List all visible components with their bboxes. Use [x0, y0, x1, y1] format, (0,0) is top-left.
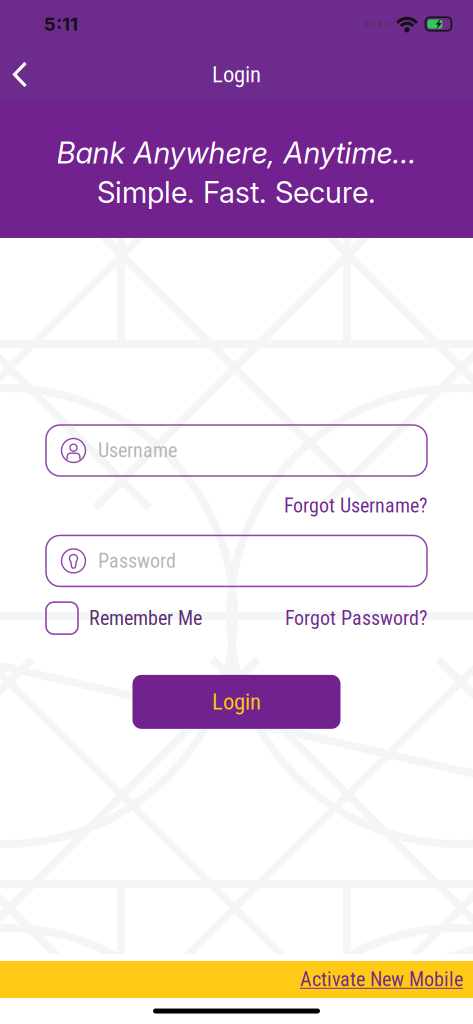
- button[interactable]: Login: [132, 675, 340, 729]
- button[interactable]: Forgot Password?: [285, 600, 427, 636]
- staticText: Activate New Mobile: [300, 968, 463, 991]
- staticText: Bank Anywhere, Anytime...: [56, 135, 416, 170]
- button[interactable]: Back: [0, 51, 44, 98]
- staticText: Login: [212, 689, 261, 715]
- staticText: Login: [212, 61, 261, 88]
- button[interactable]: Remember Me: [46, 602, 202, 634]
- button[interactable]: Activate New Mobile: [300, 968, 463, 991]
- button[interactable]: Forgot Username?: [284, 491, 427, 520]
- staticText: Username: [98, 439, 177, 462]
- staticText: Forgot Password?: [285, 606, 427, 630]
- staticText: Password: [98, 549, 176, 573]
- staticText: 5:11: [44, 13, 78, 35]
- staticText: Simple. Fast. Secure.: [97, 174, 376, 210]
- staticText: Forgot Username?: [284, 494, 427, 517]
- staticText: Remember Me: [89, 606, 202, 630]
